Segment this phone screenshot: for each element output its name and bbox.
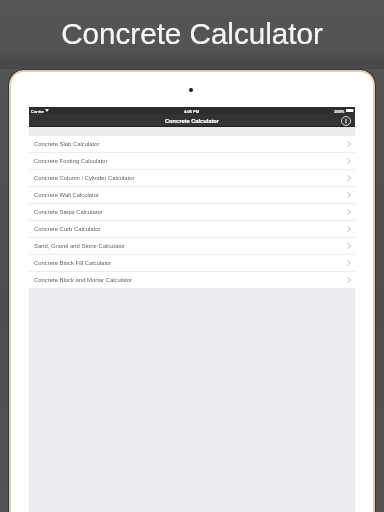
staticText: Concrete Block Fill Calculator	[34, 260, 112, 267]
staticText: Concrete Footing Calculator	[34, 158, 108, 165]
button[interactable]: Concrete Wall Calculator	[29, 187, 355, 204]
staticText: Concrete Slab Calculator	[34, 141, 100, 148]
staticText: Sand, Gravel and Stone Calculator	[34, 243, 126, 250]
button[interactable]: Info	[340, 115, 351, 126]
staticText: Concrete Calculator	[165, 118, 220, 124]
staticText: Concrete Wall Calculator	[34, 192, 99, 199]
staticText: Carrier	[31, 109, 45, 113]
staticText: Concrete Curb Calculator	[34, 226, 101, 233]
button[interactable]: Concrete Steps Calculator	[29, 204, 355, 221]
staticText: Concrete Column / Cylinder Calculator	[34, 175, 135, 182]
button[interactable]: Concrete Block Fill Calculator	[29, 255, 355, 272]
staticText: 4:06 PM	[184, 109, 200, 113]
staticText: Concrete Steps Calculator	[34, 209, 103, 216]
staticText: Concrete Block and Mortar Calculator	[34, 277, 133, 284]
button[interactable]: Concrete Block and Mortar Calculator	[29, 272, 355, 289]
button[interactable]: Concrete Column / Cylinder Calculator	[29, 170, 355, 187]
staticText: 100%	[334, 109, 345, 113]
button[interactable]: Concrete Slab Calculator	[29, 136, 355, 153]
button[interactable]: Sand, Gravel and Stone Calculator	[29, 238, 355, 255]
button[interactable]: Concrete Curb Calculator	[29, 221, 355, 238]
staticText: Concrete Calculator	[0, 17, 384, 50]
button[interactable]: Concrete Footing Calculator	[29, 153, 355, 170]
